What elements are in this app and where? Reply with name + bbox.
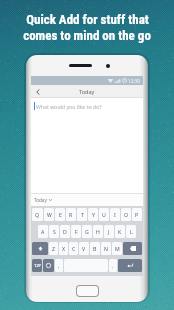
staticText: M [115, 245, 120, 252]
button[interactable]: T [77, 208, 87, 221]
button[interactable]: Emoji [43, 259, 54, 272]
button[interactable]: D [60, 225, 70, 238]
staticText: 12? [34, 263, 41, 269]
staticText: F [75, 228, 78, 235]
button[interactable]: O [121, 208, 131, 221]
staticText: N [104, 245, 108, 252]
button[interactable]: Back [31, 85, 45, 98]
button[interactable]: S [49, 225, 59, 238]
button[interactable]: P [132, 208, 142, 221]
staticText: O [124, 211, 129, 218]
button[interactable]: G [82, 225, 92, 238]
staticText: U [102, 211, 106, 218]
button[interactable]: X [59, 242, 68, 255]
button[interactable]: Y [88, 208, 98, 221]
button[interactable]: K [115, 225, 125, 238]
button[interactable]: B [90, 242, 100, 255]
button[interactable]: V [79, 242, 89, 255]
staticText: V [82, 245, 86, 252]
staticText: What would you like to do? [36, 103, 102, 110]
staticText: P [135, 211, 139, 218]
button[interactable]: W [44, 208, 54, 221]
staticText: G [85, 228, 89, 235]
staticText: Q [35, 211, 40, 218]
button[interactable]: Shift [32, 242, 48, 255]
staticText: R [69, 211, 73, 218]
staticText: C [72, 245, 76, 252]
staticText: Quick Add for stuff that [26, 12, 149, 27]
staticText: T [81, 211, 84, 218]
staticText: . [112, 262, 114, 269]
button[interactable]: , [55, 259, 63, 272]
staticText: comes to mind on the go [23, 28, 151, 43]
button[interactable]: U [99, 208, 109, 221]
button[interactable]: M [112, 242, 122, 255]
button[interactable]: R [66, 208, 76, 221]
staticText: K [118, 228, 122, 235]
staticText: J [108, 228, 110, 235]
button[interactable]: Z [49, 242, 58, 255]
button[interactable]: Enter [118, 259, 142, 272]
button[interactable]: Backspace [123, 242, 142, 255]
staticText: Today [34, 197, 47, 203]
button[interactable]: C [69, 242, 78, 255]
button[interactable]: . [109, 259, 117, 272]
button[interactable]: J [104, 225, 114, 238]
staticText: A [41, 228, 45, 235]
button[interactable]: Today [34, 197, 52, 203]
staticText: L [130, 228, 133, 235]
button[interactable]: L [126, 225, 136, 238]
button[interactable]: H [93, 225, 103, 238]
button[interactable]: I [110, 208, 120, 221]
staticText: Today [79, 88, 95, 95]
staticText: D [63, 228, 67, 235]
staticText: X [62, 245, 66, 252]
button[interactable]: N [101, 242, 111, 255]
staticText: Z [52, 245, 55, 252]
button[interactable]: Numbers [32, 259, 42, 272]
staticText: I [114, 211, 116, 218]
staticText: , [58, 262, 60, 269]
staticText: S [53, 228, 56, 235]
staticText: 12:30 [128, 78, 140, 84]
button[interactable]: E [55, 208, 65, 221]
staticText: E [59, 211, 62, 218]
staticText: Y [92, 211, 95, 218]
staticText: B [93, 245, 97, 252]
staticText: H [96, 228, 100, 235]
button[interactable]: F [71, 225, 81, 238]
button[interactable]: Q [32, 208, 43, 221]
button[interactable]: A [38, 225, 48, 238]
staticText: W [47, 211, 52, 218]
